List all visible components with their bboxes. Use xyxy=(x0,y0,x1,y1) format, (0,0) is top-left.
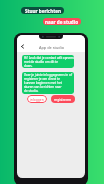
staticText: Hi! Leuk dat je contact wilt opnemen met… xyxy=(24,56,74,68)
button[interactable]: naar de studio xyxy=(43,18,81,25)
staticText: Voer je juiste inloggegevens in of regis… xyxy=(24,73,72,93)
staticText: registreren xyxy=(54,97,72,101)
button[interactable]: inloggen xyxy=(27,95,47,103)
button[interactable]: registreren xyxy=(51,95,75,103)
staticText: App de studio xyxy=(39,45,64,50)
staticText: inloggen xyxy=(30,97,44,101)
staticText: Stuur berichten xyxy=(25,8,61,14)
button[interactable]: Stuur berichten xyxy=(21,7,64,14)
staticText: naar de studio xyxy=(45,19,79,25)
button[interactable]: Back xyxy=(19,43,26,50)
